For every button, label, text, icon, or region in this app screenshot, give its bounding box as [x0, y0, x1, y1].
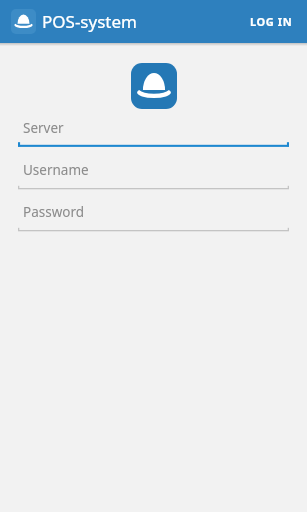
button[interactable]: LOG IN — [236, 2, 307, 41]
button[interactable]: Username — [18, 159, 289, 190]
button[interactable]: App logo — [11, 9, 36, 34]
staticText: Server — [23, 119, 64, 137]
staticText: Password — [23, 203, 85, 221]
staticText: Username — [23, 161, 89, 179]
staticText: LOG IN — [250, 14, 293, 29]
button[interactable]: Password — [18, 201, 289, 232]
staticText: POS-system — [42, 10, 137, 33]
button[interactable]: Server — [18, 117, 289, 148]
